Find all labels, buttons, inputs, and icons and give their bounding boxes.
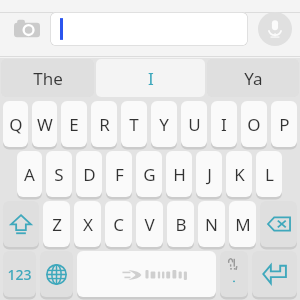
staticText: P [279, 113, 290, 136]
staticText: Q [9, 113, 23, 136]
staticText: Z [52, 213, 62, 236]
staticText: I [221, 113, 227, 136]
staticText: A [24, 163, 35, 186]
button[interactable]: K [226, 151, 252, 197]
staticText: T [129, 113, 139, 136]
button[interactable]: T [121, 101, 147, 147]
button[interactable]: U [181, 101, 207, 147]
button[interactable]: Backspace [260, 201, 297, 247]
staticText: R [99, 113, 110, 136]
staticText: K [234, 163, 245, 186]
staticText: The [33, 67, 63, 90]
button[interactable]: Punctuation [220, 251, 248, 297]
button[interactable]: Space [77, 251, 216, 297]
button[interactable]: X [74, 201, 101, 247]
staticText: U [188, 113, 201, 136]
button[interactable]: R [91, 101, 117, 147]
staticText: B [175, 213, 187, 236]
button[interactable]: C [105, 201, 132, 247]
staticText: M [235, 213, 251, 236]
staticText: Y [159, 113, 169, 136]
button[interactable]: Voice input [256, 10, 294, 48]
button[interactable]: I [96, 59, 205, 97]
button[interactable]: N [198, 201, 225, 247]
staticText: V [144, 213, 155, 236]
staticText: N [205, 213, 218, 236]
staticText: L [265, 163, 274, 186]
button[interactable]: I [211, 101, 237, 147]
button[interactable]: M [229, 201, 256, 247]
button[interactable]: Shift [3, 201, 39, 247]
button[interactable]: H [166, 151, 192, 197]
button[interactable]: G [136, 151, 162, 197]
staticText: G [143, 163, 156, 186]
button[interactable]: S [46, 151, 72, 197]
button[interactable]: Q [3, 101, 28, 147]
staticText: J [207, 163, 212, 186]
button[interactable]: O [241, 101, 267, 147]
button[interactable]: Enter [252, 251, 297, 297]
button[interactable]: E [61, 101, 87, 147]
button[interactable]: The [1, 59, 94, 97]
staticText: X [83, 213, 93, 236]
button[interactable]: Ya [207, 59, 299, 97]
staticText: E [69, 113, 79, 136]
staticText: Ya [244, 67, 263, 90]
button[interactable]: J [196, 151, 222, 197]
button[interactable]: D [76, 151, 102, 197]
button[interactable]: F [106, 151, 132, 197]
button[interactable]: Y [151, 101, 177, 147]
button[interactable] [50, 12, 248, 46]
staticText: 123 [7, 265, 32, 284]
button[interactable]: A [17, 151, 42, 197]
button[interactable]: Z [43, 201, 70, 247]
button[interactable]: L [256, 151, 282, 197]
staticText: W [37, 113, 53, 136]
button[interactable]: V [136, 201, 163, 247]
staticText: D [83, 163, 96, 186]
staticText: O [247, 113, 261, 136]
staticText: S [54, 163, 64, 186]
button[interactable]: W [32, 101, 57, 147]
button[interactable]: Change language [40, 251, 73, 297]
staticText: H [173, 163, 186, 186]
button[interactable]: 123 [3, 251, 36, 297]
button[interactable]: B [167, 201, 194, 247]
button[interactable]: P [271, 101, 297, 147]
staticText: C [113, 213, 124, 236]
staticText: I [148, 67, 154, 90]
button[interactable]: Camera [10, 12, 44, 46]
staticText: F [115, 163, 124, 186]
